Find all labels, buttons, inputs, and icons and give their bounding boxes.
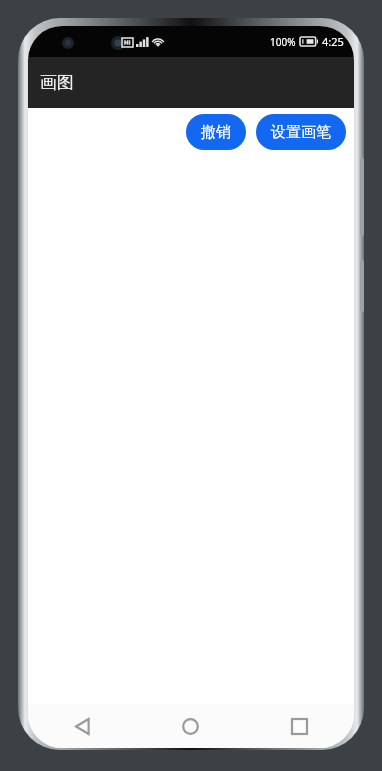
staticText: 设置画笔: [271, 123, 331, 142]
staticText: 画图: [40, 72, 74, 93]
button[interactable]: Recents: [245, 704, 354, 748]
button[interactable]: 设置画笔: [256, 114, 346, 150]
staticText: 100%: [270, 35, 296, 49]
button[interactable]: Back: [28, 704, 136, 748]
staticText: 撤销: [201, 123, 231, 142]
button[interactable]: 撤销: [186, 114, 246, 150]
staticText: 4:25: [322, 34, 344, 49]
button[interactable]: Home: [136, 704, 245, 748]
